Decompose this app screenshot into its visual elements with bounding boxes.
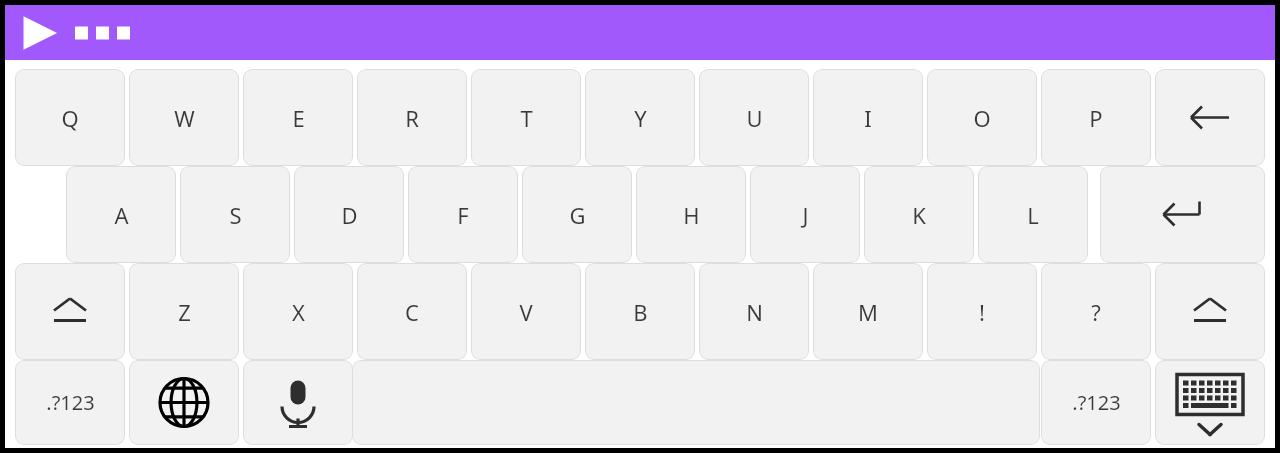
button[interactable]: Space [352, 360, 1040, 445]
staticText: T [520, 103, 533, 133]
staticText: C [405, 297, 419, 327]
staticText: E [292, 103, 305, 133]
button[interactable]: Enter [1100, 166, 1265, 263]
staticText: Q [61, 103, 79, 133]
button[interactable]: V [471, 263, 581, 360]
staticText: U [746, 103, 763, 133]
button[interactable]: ? [1041, 263, 1151, 360]
button[interactable]: S [180, 166, 290, 263]
button[interactable]: Backspace [1155, 69, 1265, 166]
button[interactable]: P [1041, 69, 1151, 166]
staticText: D [341, 200, 358, 230]
staticText: L [1027, 200, 1039, 230]
staticText: ! [979, 297, 985, 327]
staticText: R [405, 103, 419, 133]
button[interactable]: J [750, 166, 860, 263]
button[interactable]: L [978, 166, 1088, 263]
button[interactable]: C [357, 263, 467, 360]
button[interactable]: X [243, 263, 353, 360]
button[interactable]: More options [75, 23, 129, 43]
staticText: G [569, 200, 586, 230]
button[interactable]: .?123 [15, 360, 125, 445]
staticText: A [114, 200, 129, 230]
button[interactable]: ! [927, 263, 1037, 360]
button[interactable]: Shift [15, 263, 125, 360]
staticText: .?123 [1072, 389, 1121, 416]
button[interactable]: I [813, 69, 923, 166]
button[interactable]: T [471, 69, 581, 166]
button[interactable]: B [585, 263, 695, 360]
button[interactable]: N [699, 263, 809, 360]
button[interactable]: .?123 [1041, 360, 1151, 445]
button[interactable]: K [864, 166, 974, 263]
button[interactable]: A [66, 166, 176, 263]
button[interactable]: Hide keyboard [1155, 360, 1265, 445]
button[interactable]: Change language [129, 360, 239, 445]
staticText: Y [634, 103, 647, 133]
button[interactable]: M [813, 263, 923, 360]
staticText: O [973, 103, 991, 133]
staticText: Z [178, 297, 191, 327]
button[interactable]: D [294, 166, 404, 263]
staticText: B [633, 297, 648, 327]
button[interactable]: O [927, 69, 1037, 166]
button[interactable]: Voice input [243, 360, 353, 445]
staticText: ? [1091, 297, 1101, 327]
button[interactable]: G [522, 166, 632, 263]
button[interactable]: Play [18, 12, 64, 54]
staticText: H [683, 200, 700, 230]
button[interactable]: W [129, 69, 239, 166]
button[interactable]: Q [15, 69, 125, 166]
staticText: M [858, 297, 878, 327]
staticText: .?123 [46, 389, 95, 416]
button[interactable]: R [357, 69, 467, 166]
staticText: S [229, 200, 242, 230]
staticText: X [292, 297, 305, 327]
staticText: V [519, 297, 533, 327]
staticText: J [802, 200, 809, 230]
staticText: N [746, 297, 763, 327]
button[interactable]: Shift [1155, 263, 1265, 360]
staticText: W [174, 103, 195, 133]
button[interactable]: Y [585, 69, 695, 166]
button[interactable]: E [243, 69, 353, 166]
button[interactable]: U [699, 69, 809, 166]
button[interactable]: F [408, 166, 518, 263]
staticText: F [457, 200, 469, 230]
staticText: K [912, 200, 926, 230]
staticText: P [1089, 103, 1103, 133]
button[interactable]: Z [129, 263, 239, 360]
staticText: I [864, 103, 872, 133]
button[interactable]: H [636, 166, 746, 263]
